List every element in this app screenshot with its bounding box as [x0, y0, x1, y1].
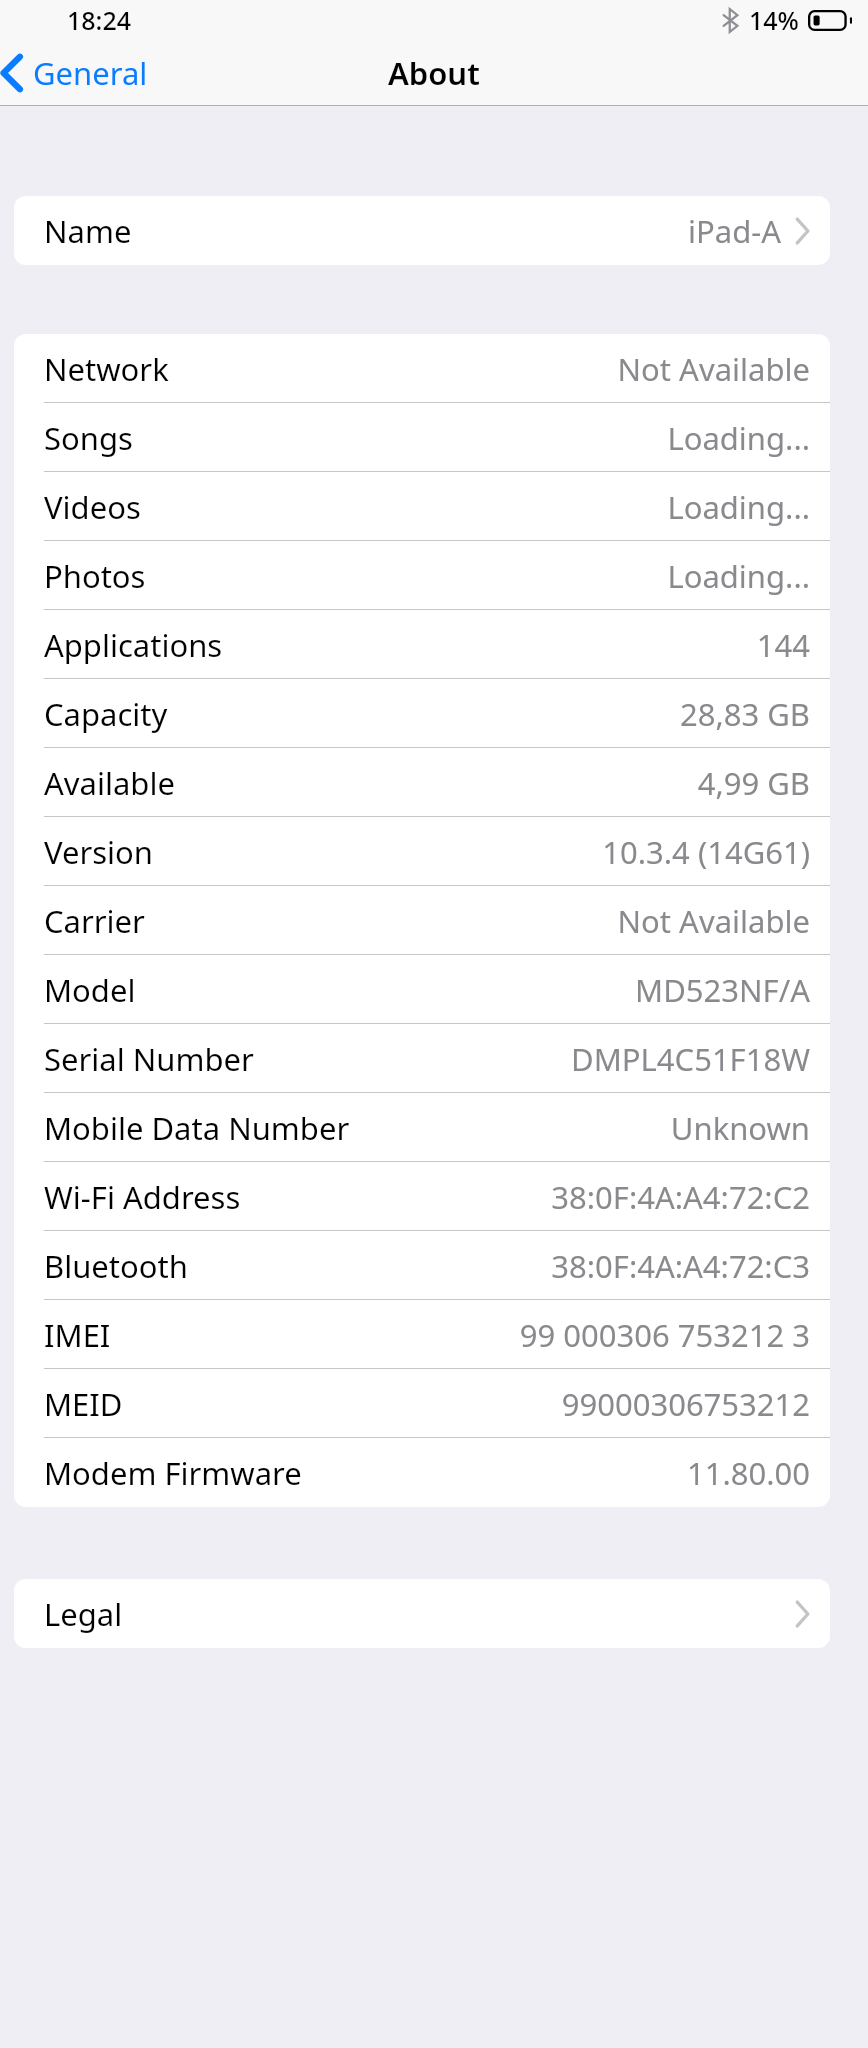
staticText: Photos — [44, 555, 146, 597]
staticText: Bluetooth — [44, 1245, 188, 1287]
staticText: 4,99 GB — [697, 762, 810, 804]
staticText: Not Available — [617, 900, 810, 942]
staticText: DMPL4C51F18W — [571, 1038, 810, 1080]
button[interactable]: Network — [14, 334, 830, 403]
staticText: 11.80.00 — [686, 1452, 810, 1494]
button[interactable]: Legal — [14, 1579, 830, 1648]
staticText: Name — [44, 210, 132, 252]
button[interactable]: Photos — [14, 541, 830, 610]
button[interactable]: Bluetooth — [14, 1231, 830, 1300]
staticText: Applications — [44, 624, 223, 666]
button[interactable]: Carrier — [14, 886, 830, 955]
staticText: Wi-Fi Address — [44, 1176, 241, 1218]
staticText: Version — [44, 831, 154, 873]
staticText: Mobile Data Number — [44, 1107, 350, 1149]
button[interactable]: Serial Number — [14, 1024, 830, 1093]
staticText: Songs — [44, 417, 133, 459]
staticText: MEID — [44, 1383, 123, 1425]
button[interactable]: MEID — [14, 1369, 830, 1438]
button[interactable]: Available — [14, 748, 830, 817]
staticText: IMEI — [44, 1314, 111, 1356]
other: Open Legal — [795, 1601, 810, 1627]
other: Open Name — [795, 218, 810, 244]
staticText: Capacity — [44, 693, 168, 735]
button[interactable]: Modem Firmware — [14, 1438, 830, 1507]
staticText: 18:24 — [67, 3, 132, 37]
staticText: About — [388, 52, 480, 94]
staticText: 144 — [756, 624, 810, 666]
staticText: Model — [44, 969, 136, 1011]
staticText: MD523NF/A — [635, 969, 810, 1011]
button[interactable]: Videos — [14, 472, 830, 541]
staticText: Network — [44, 348, 169, 390]
staticText: 10.3.4 (14G61) — [602, 831, 810, 873]
button[interactable]: Applications — [14, 610, 830, 679]
staticText: 14% — [749, 3, 799, 37]
button[interactable]: IMEI — [14, 1300, 830, 1369]
staticText: Not Available — [617, 348, 810, 390]
staticText: Carrier — [44, 900, 145, 942]
staticText: Loading... — [667, 555, 810, 597]
staticText: Unknown — [670, 1107, 810, 1149]
other: Back — [1, 55, 22, 91]
button[interactable]: Name — [14, 196, 830, 265]
staticText: Loading... — [667, 417, 810, 459]
button[interactable]: Capacity — [14, 679, 830, 748]
staticText: 38:0F:4A:A4:72:C2 — [551, 1176, 810, 1218]
button[interactable]: Wi-Fi Address — [14, 1162, 830, 1231]
button[interactable]: Model — [14, 955, 830, 1024]
button[interactable]: Back — [0, 44, 162, 102]
staticText: Legal — [44, 1593, 123, 1635]
button[interactable]: Songs — [14, 403, 830, 472]
staticText: General — [33, 52, 148, 94]
staticText: Videos — [44, 486, 141, 528]
button[interactable]: Version — [14, 817, 830, 886]
staticText: 99 000306 753212 3 — [519, 1314, 810, 1356]
button[interactable]: Mobile Data Number — [14, 1093, 830, 1162]
staticText: Serial Number — [44, 1038, 254, 1080]
staticText: Available — [44, 762, 175, 804]
staticText: 28,83 GB — [679, 693, 810, 735]
staticText: 38:0F:4A:A4:72:C3 — [551, 1245, 810, 1287]
staticText: 99000306753212 — [561, 1383, 810, 1425]
staticText: Modem Firmware — [44, 1452, 302, 1494]
staticText: Loading... — [667, 486, 810, 528]
staticText: iPad-A — [688, 210, 781, 252]
